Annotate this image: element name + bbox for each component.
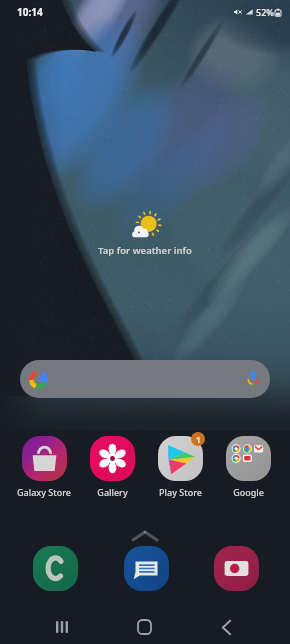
button[interactable]: Gallery [80,436,144,498]
other: Open app drawer [0,531,290,543]
button[interactable]: Google folder [216,436,280,498]
button[interactable]: Messages [114,546,178,591]
staticText: Google [233,486,264,498]
button[interactable]: Phone [23,546,87,591]
staticText: Galaxy Store [17,486,71,498]
staticText: 1 [196,434,201,445]
button[interactable]: Play Store [148,436,212,498]
button[interactable]: Galaxy Store [12,436,76,498]
staticText: 10:14 [17,5,43,19]
staticText: Play Store [159,486,202,498]
button[interactable]: Home [124,610,164,644]
staticText: Gallery [97,486,128,498]
staticText: 52% [256,6,274,18]
button[interactable]: Recent apps [42,610,82,644]
button[interactable]: Google search [20,360,270,398]
button[interactable]: Camera [204,546,268,591]
button[interactable]: Back [206,610,246,644]
button[interactable]: Tap for weather info [0,206,290,257]
staticText: Tap for weather info [98,244,192,257]
